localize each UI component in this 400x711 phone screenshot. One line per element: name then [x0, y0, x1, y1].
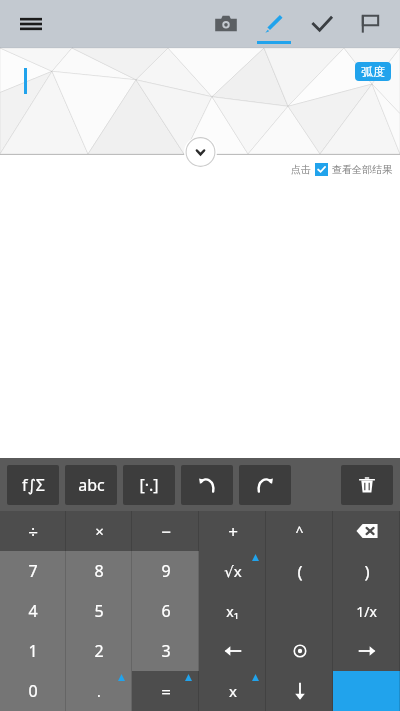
button[interactable]: .: [66, 671, 132, 711]
staticText: (: [297, 560, 303, 583]
button[interactable]: Confirm: [298, 0, 346, 48]
button[interactable]: Edit: [250, 0, 298, 48]
button[interactable]: TARGET: [266, 631, 333, 671]
staticText: 点击: [291, 163, 311, 176]
button[interactable]: 5: [66, 591, 132, 631]
button[interactable]: ): [333, 551, 400, 591]
staticText: +: [228, 520, 238, 543]
button[interactable]: =: [132, 671, 199, 711]
staticText: .: [97, 682, 101, 701]
button[interactable]: [333, 671, 400, 711]
button[interactable]: Camera: [202, 0, 250, 48]
button[interactable]: f∫Σ: [7, 465, 59, 505]
button[interactable]: ^: [266, 511, 333, 551]
button[interactable]: 0: [0, 671, 66, 711]
button[interactable]: Expand: [184, 137, 217, 167]
button[interactable]: Undo: [181, 465, 233, 505]
button[interactable]: Menu: [14, 7, 48, 41]
button[interactable]: abc: [65, 465, 117, 505]
staticText: x₁: [226, 602, 239, 621]
staticText: ÷: [28, 520, 38, 543]
button[interactable]: 4: [0, 591, 66, 631]
button[interactable]: ARROW_RIGHT: [333, 631, 400, 671]
button[interactable]: ×: [66, 511, 132, 551]
staticText: 9: [161, 560, 171, 582]
button[interactable]: 点击: [291, 163, 392, 176]
button[interactable]: Delete all: [341, 465, 393, 505]
button[interactable]: ARROW_DOWN: [266, 671, 333, 711]
staticText: 6: [161, 600, 171, 622]
staticText: 查看全部结果: [332, 163, 392, 176]
button[interactable]: −: [132, 511, 199, 551]
button[interactable]: 3: [132, 631, 199, 671]
button[interactable]: +: [199, 511, 266, 551]
button[interactable]: x₁: [199, 591, 266, 631]
button[interactable]: ÷: [0, 511, 66, 551]
button[interactable]: 2: [66, 631, 132, 671]
staticText: abc: [78, 474, 105, 496]
staticText: =: [161, 680, 171, 703]
staticText: 1/x: [356, 602, 377, 621]
button[interactable]: x: [199, 671, 266, 711]
button[interactable]: 1/x: [333, 591, 400, 631]
staticText: 4: [28, 600, 38, 622]
staticText: 7: [28, 560, 38, 582]
button[interactable]: (: [266, 551, 333, 591]
staticText: 5: [94, 600, 104, 622]
button[interactable]: [·.]: [123, 465, 175, 505]
button[interactable]: 1: [0, 631, 66, 671]
staticText: x: [229, 681, 237, 701]
staticText: ^: [295, 522, 304, 541]
button[interactable]: BACKSPACE: [333, 511, 400, 551]
staticText: ×: [95, 521, 104, 541]
button[interactable]: 弧度: [355, 62, 391, 81]
staticText: 弧度: [361, 64, 385, 79]
button[interactable]: 8: [66, 551, 132, 591]
staticText: 1: [28, 640, 38, 662]
button[interactable]: √x: [199, 551, 266, 591]
staticText: 3: [161, 640, 171, 662]
staticText: 8: [94, 560, 104, 582]
button[interactable]: Redo: [239, 465, 291, 505]
staticText: f∫Σ: [22, 474, 45, 496]
button[interactable]: ARROW_LEFT: [199, 631, 266, 671]
staticText: [·.]: [139, 474, 159, 496]
staticText: −: [161, 520, 171, 543]
staticText: 0: [28, 680, 38, 702]
button[interactable]: 7: [0, 551, 66, 591]
staticText: ): [364, 560, 370, 583]
staticText: 2: [94, 640, 104, 662]
button[interactable]: 9: [132, 551, 199, 591]
button[interactable]: 6: [132, 591, 199, 631]
staticText: √x: [224, 561, 242, 581]
button[interactable]: Flag: [346, 0, 394, 48]
